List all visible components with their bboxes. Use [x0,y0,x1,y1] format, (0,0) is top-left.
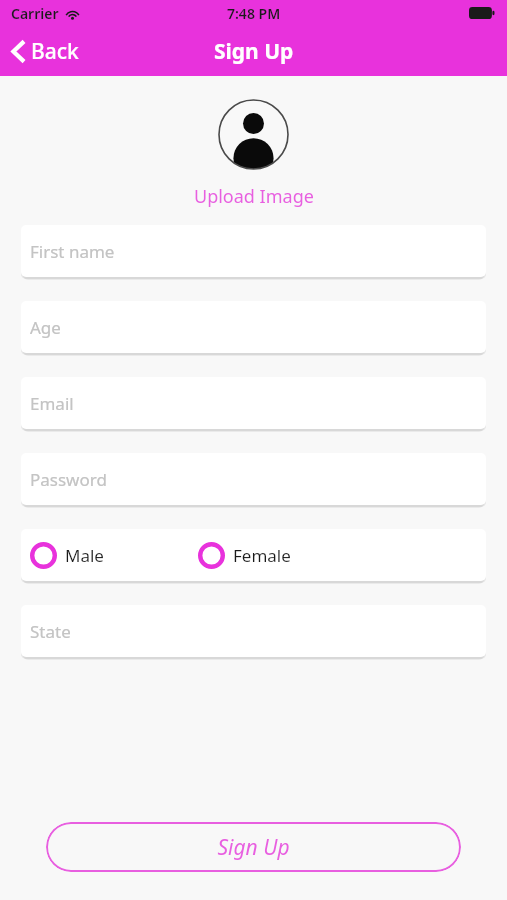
staticText: Back [31,37,79,66]
staticText: Sign Up [217,833,290,862]
button[interactable]: Age [21,301,486,353]
button[interactable]: State [21,605,486,657]
button[interactable]: Female [198,538,291,573]
staticText: Age [30,316,61,339]
staticText: Male [65,544,104,567]
staticText: State [30,620,71,643]
staticText: Password [30,468,107,491]
button[interactable]: Sign Up [46,822,461,872]
button[interactable]: Email [21,377,486,429]
button[interactable]: Male [30,538,104,573]
button[interactable]: Back [0,31,93,72]
staticText: Upload Image [194,184,314,209]
staticText: 7:48 PM [227,4,281,23]
button[interactable]: Password [21,453,486,505]
button[interactable]: First name [21,225,486,277]
staticText: Female [233,544,291,567]
button[interactable]: Male [21,529,486,581]
staticText: Sign Up [214,37,294,66]
staticText: Email [30,392,74,415]
staticText: First name [30,240,115,263]
staticText: Carrier [11,4,59,23]
button[interactable]: Upload Image [186,182,322,211]
button[interactable]: Upload profile image [218,99,289,170]
